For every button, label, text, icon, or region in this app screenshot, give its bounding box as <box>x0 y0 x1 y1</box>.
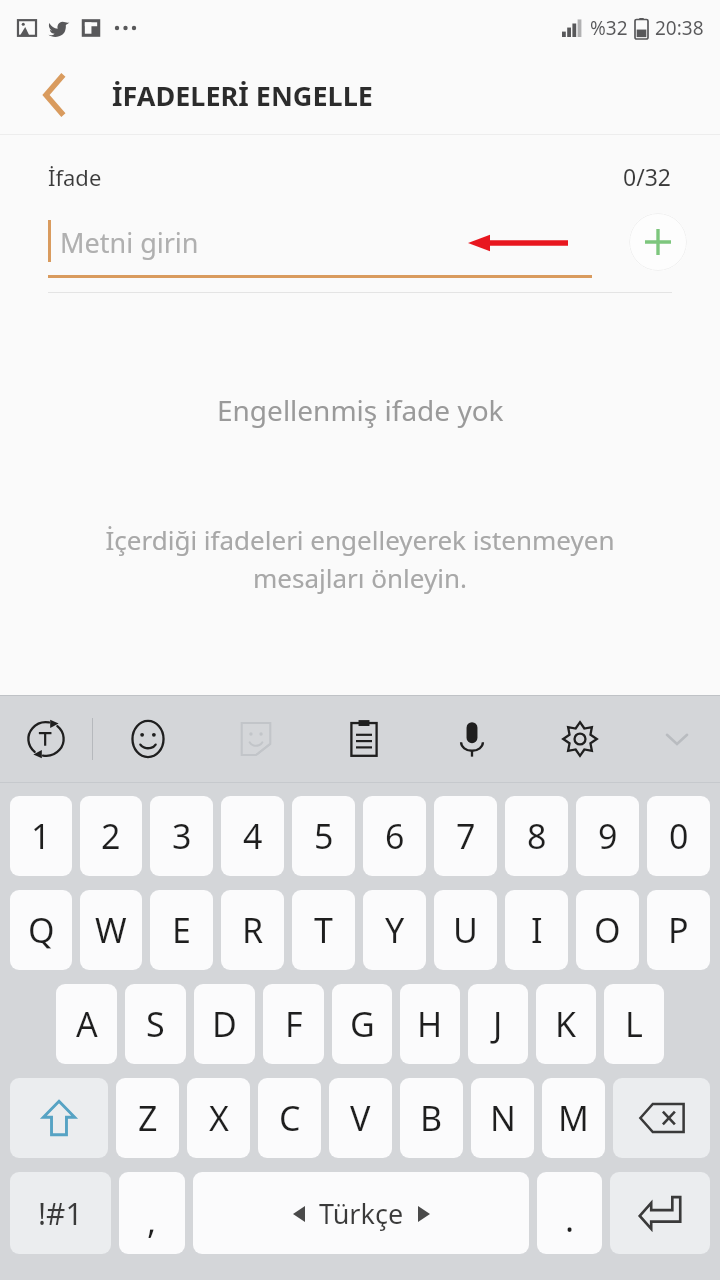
button[interactable]: Enter <box>610 1172 710 1254</box>
staticText: 2 <box>101 813 121 859</box>
button[interactable]: T <box>292 890 355 970</box>
button[interactable]: M <box>542 1078 605 1158</box>
staticText: J <box>493 1001 503 1047</box>
button[interactable]: 1 <box>10 796 72 876</box>
staticText: C <box>279 1095 301 1141</box>
button[interactable]: 5 <box>292 796 355 876</box>
staticText: 20:38 <box>655 15 704 41</box>
button[interactable]: F <box>263 984 324 1064</box>
staticText: U <box>453 907 478 953</box>
staticText: M <box>558 1095 589 1141</box>
staticText: L <box>625 1001 643 1047</box>
button[interactable]: Add phrase <box>629 213 687 271</box>
staticText: O <box>594 907 621 953</box>
staticText: 8 <box>527 813 547 859</box>
staticText: İfade <box>48 162 102 192</box>
button[interactable]: N <box>471 1078 534 1158</box>
button[interactable]: Period <box>537 1172 602 1254</box>
button[interactable]: P <box>647 890 710 970</box>
button[interactable]: 4 <box>221 796 284 876</box>
button[interactable]: Z <box>116 1078 179 1158</box>
button[interactable]: O <box>576 890 639 970</box>
button[interactable]: W <box>80 890 142 970</box>
staticText: 0 <box>669 813 689 859</box>
staticText: 5 <box>314 813 334 859</box>
button[interactable]: Clipboard <box>310 696 418 782</box>
staticText: Q <box>28 907 55 953</box>
staticText: 9 <box>598 813 618 859</box>
staticText: E <box>172 907 191 953</box>
button[interactable]: A <box>56 984 117 1064</box>
staticText: N <box>490 1095 516 1141</box>
staticText: 4 <box>243 813 263 859</box>
button[interactable]: Back <box>26 67 82 123</box>
button[interactable]: U <box>434 890 497 970</box>
button[interactable]: 6 <box>363 796 426 876</box>
button[interactable]: H <box>400 984 460 1064</box>
staticText: X <box>209 1095 229 1141</box>
staticText: W <box>95 907 127 953</box>
button[interactable]: Emoji <box>93 696 202 782</box>
staticText: T <box>314 907 333 953</box>
button[interactable]: 9 <box>576 796 639 876</box>
staticText: A <box>76 1001 98 1047</box>
button[interactable]: Symbols <box>10 1172 111 1254</box>
staticText: G <box>350 1001 375 1047</box>
staticText: !#1 <box>38 1193 83 1234</box>
button[interactable]: Shift <box>10 1078 108 1158</box>
button[interactable]: S <box>125 984 186 1064</box>
button[interactable]: 3 <box>150 796 213 876</box>
staticText: F <box>285 1001 303 1047</box>
staticText: %32 <box>590 15 628 41</box>
button[interactable]: 0 <box>647 796 710 876</box>
staticText: I <box>531 907 543 953</box>
button[interactable]: D <box>194 984 255 1064</box>
button[interactable]: R <box>221 890 284 970</box>
button[interactable]: L <box>604 984 664 1064</box>
button[interactable]: Voice input <box>418 696 526 782</box>
button[interactable]: B <box>400 1078 463 1158</box>
staticText: K <box>555 1001 577 1047</box>
button[interactable]: Comma <box>119 1172 185 1254</box>
staticText: Z <box>138 1095 158 1141</box>
staticText: B <box>420 1095 443 1141</box>
button[interactable]: Q <box>10 890 72 970</box>
staticText: R <box>242 907 264 953</box>
button[interactable]: Space, Türkçe <box>193 1172 529 1254</box>
button[interactable]: Y <box>363 890 426 970</box>
button[interactable]: Keyboard settings <box>526 696 634 782</box>
staticText: 7 <box>456 813 476 859</box>
button[interactable]: Text mode <box>0 696 92 782</box>
button[interactable]: Backspace <box>613 1078 710 1158</box>
button[interactable]: G <box>332 984 392 1064</box>
button[interactable]: Metni girin <box>48 206 592 278</box>
staticText: Metni girin <box>60 224 199 261</box>
button[interactable]: 8 <box>505 796 568 876</box>
button[interactable]: X <box>187 1078 250 1158</box>
staticText: Engellenmiş ifade yok <box>217 391 504 429</box>
button[interactable]: V <box>329 1078 392 1158</box>
button[interactable]: 2 <box>80 796 142 876</box>
staticText: 0/32 <box>623 161 672 192</box>
staticText: 3 <box>172 813 192 859</box>
staticText: , <box>147 1198 157 1244</box>
staticText: S <box>146 1001 165 1047</box>
button[interactable]: C <box>258 1078 321 1158</box>
button[interactable]: 7 <box>434 796 497 876</box>
staticText: 6 <box>385 813 405 859</box>
staticText: İçerdiği ifadeleri engelleyerek istenmey… <box>56 522 664 595</box>
button[interactable]: J <box>468 984 528 1064</box>
staticText: Y <box>385 907 405 953</box>
staticText: P <box>668 907 689 953</box>
staticText: V <box>350 1095 371 1141</box>
button[interactable]: I <box>505 890 568 970</box>
staticText: . <box>565 1196 575 1242</box>
button[interactable]: K <box>536 984 596 1064</box>
staticText: Türkçe <box>319 1195 404 1232</box>
button[interactable]: E <box>150 890 213 970</box>
staticText: İFADELERİ ENGELLE <box>112 77 373 114</box>
staticText: 1 <box>31 813 51 859</box>
staticText: H <box>417 1001 443 1047</box>
